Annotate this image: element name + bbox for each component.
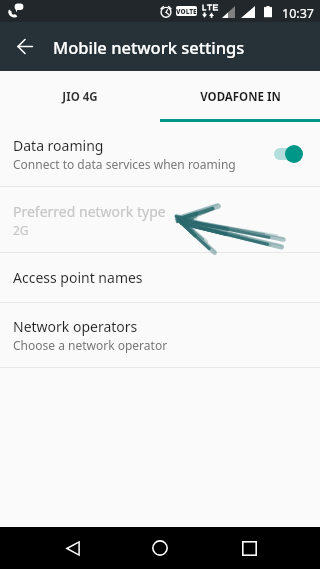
- button[interactable]: Navigate up: [8, 30, 41, 63]
- staticText: VOLTE: [176, 7, 197, 16]
- button[interactable]: Recent apps: [225, 527, 273, 569]
- button[interactable]: Network operators: [0, 303, 320, 367]
- staticText: Access point names: [13, 268, 143, 287]
- button[interactable]: Access point names: [0, 253, 320, 302]
- button[interactable]: Home: [136, 527, 184, 569]
- staticText: 2G: [13, 222, 29, 238]
- staticText: Network operators: [13, 317, 138, 336]
- button[interactable]: VODAFONE IN: [160, 71, 320, 122]
- staticText: JIO 4G: [62, 89, 98, 105]
- staticText: Preferred network type: [13, 202, 166, 221]
- staticText: Choose a network operator: [13, 337, 168, 353]
- staticText: VODAFONE IN: [200, 89, 281, 105]
- button[interactable]: Back: [49, 527, 97, 569]
- button[interactable]: JIO 4G: [0, 71, 160, 122]
- staticText: 10:37: [282, 5, 314, 22]
- staticText: Data roaming: [13, 136, 104, 155]
- staticText: Connect to data services when roaming: [13, 156, 236, 172]
- button[interactable]: Data roaming: [0, 122, 320, 186]
- staticText: Mobile network settings: [53, 36, 245, 58]
